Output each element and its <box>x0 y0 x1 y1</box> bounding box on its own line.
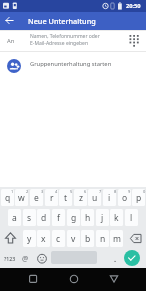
staticText: Neue Unterhaltung <box>28 16 96 26</box>
button[interactable]: a <box>8 209 21 226</box>
staticText: h <box>85 212 91 224</box>
staticText: Gruppenunterhaltung starten <box>30 60 112 68</box>
button[interactable]: d <box>37 209 50 226</box>
staticText: E-Mail-Adresse eingeben <box>30 40 88 46</box>
button[interactable]: l <box>125 209 138 226</box>
staticText: ?123 <box>4 255 16 262</box>
staticText: Namen, Telefonnummer oder <box>30 33 100 39</box>
staticText: c <box>56 233 61 245</box>
staticText: d <box>41 212 47 224</box>
button[interactable]: n <box>96 230 109 247</box>
button[interactable]: u <box>88 189 101 206</box>
button[interactable]: e <box>30 189 43 206</box>
staticText: 1 <box>11 189 14 194</box>
staticText: k <box>114 212 119 224</box>
button[interactable]: . <box>110 250 121 267</box>
button[interactable]: @ <box>20 250 31 267</box>
staticText: s <box>27 212 32 224</box>
staticText: 8 <box>114 189 117 194</box>
staticText: t <box>64 192 68 204</box>
button[interactable]: An <box>0 30 146 51</box>
button[interactable] <box>67 272 81 286</box>
button[interactable]: y <box>23 230 36 247</box>
staticText: i <box>108 192 111 204</box>
button[interactable]: Gruppenunterhaltung starten <box>0 52 146 76</box>
button[interactable]: r <box>45 189 58 206</box>
staticText: b <box>85 233 91 245</box>
button[interactable]: z <box>74 189 87 206</box>
button[interactable] <box>107 272 121 286</box>
staticText: f <box>57 212 60 224</box>
button[interactable] <box>2 15 17 28</box>
staticText: u <box>92 192 98 204</box>
staticText: @ <box>22 254 29 264</box>
button[interactable]: f <box>52 209 65 226</box>
staticText: g <box>71 212 77 224</box>
staticText: 9 <box>128 189 131 194</box>
staticText: e <box>34 192 39 204</box>
button[interactable] <box>36 250 48 267</box>
button[interactable]: ?123 <box>1 250 19 267</box>
button[interactable]: s <box>23 209 36 226</box>
staticText: 7 <box>99 189 102 194</box>
button[interactable]: m <box>110 230 123 247</box>
staticText: An <box>7 37 15 45</box>
staticText: 3 <box>41 189 44 194</box>
staticText: a <box>12 212 17 224</box>
button[interactable]: j <box>96 209 109 226</box>
button[interactable]: p <box>132 189 145 206</box>
staticText: r <box>50 192 54 204</box>
staticText: o <box>122 192 128 204</box>
staticText: 5 <box>70 189 73 194</box>
staticText: 20:50 <box>126 2 141 10</box>
staticText: 2 <box>26 189 29 194</box>
button[interactable] <box>124 250 140 266</box>
button[interactable]: v <box>67 230 80 247</box>
staticText: p <box>136 192 142 204</box>
button[interactable]: t <box>59 189 72 206</box>
button[interactable]: b <box>81 230 94 247</box>
button[interactable]: c <box>52 230 65 247</box>
staticText: w <box>18 192 25 204</box>
button[interactable]: x <box>37 230 50 247</box>
staticText: 6 <box>84 189 87 194</box>
staticText: 4 <box>55 189 58 194</box>
staticText: . <box>114 254 117 264</box>
button[interactable]: k <box>110 209 123 226</box>
button[interactable]: i <box>103 189 116 206</box>
staticText: n <box>100 233 106 245</box>
button[interactable] <box>127 33 142 48</box>
button[interactable]: o <box>118 189 131 206</box>
button[interactable] <box>126 230 145 247</box>
button[interactable]: q <box>1 189 14 206</box>
staticText: l <box>130 212 133 224</box>
button[interactable] <box>26 272 40 286</box>
staticText: 0 <box>143 189 146 194</box>
staticText: v <box>71 233 76 245</box>
button[interactable] <box>1 230 20 247</box>
staticText: j <box>101 212 104 224</box>
staticText: y <box>27 233 32 245</box>
staticText: z <box>79 192 83 204</box>
staticText: q <box>5 192 11 204</box>
staticText: m <box>113 233 121 245</box>
button[interactable]: g <box>67 209 80 226</box>
button[interactable]: h <box>81 209 94 226</box>
button[interactable]: w <box>15 189 28 206</box>
staticText: x <box>41 233 46 245</box>
